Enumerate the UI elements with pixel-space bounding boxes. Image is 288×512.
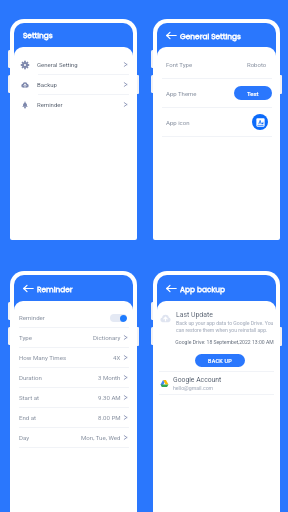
staticText: Test [247,90,259,97]
staticText: Google Account [173,376,222,384]
button[interactable]: Back [23,283,34,294]
staticText: hello@gmail.com [173,385,214,391]
staticText: Google Drive: 18 Septembet,2022 13:00 AM [173,339,276,345]
button[interactable]: Back [166,30,177,41]
button[interactable]: BACK UP [195,354,245,367]
button[interactable]: Reminder [14,95,133,114]
button[interactable]: Type [14,328,133,347]
staticText: Reminder [19,314,45,321]
button[interactable]: Backup [14,75,133,94]
button[interactable]: End at [14,408,133,427]
staticText: Mon, Tue, Wed [81,434,121,441]
button[interactable]: Font Type [157,50,276,78]
staticText: Roboto [247,61,267,68]
button[interactable]: General Setting [14,55,133,74]
button[interactable]: Duration [14,368,133,387]
staticText: Start at [19,394,39,401]
staticText: 9.30 AM [98,394,121,401]
staticText: Duration [19,374,42,381]
button[interactable]: Reminder toggle [110,314,127,322]
button[interactable]: Reminder [14,308,133,327]
staticText: App Theme [166,90,197,97]
staticText: General Setting [37,61,78,68]
staticText: 8.00 PM [98,414,121,421]
staticText: Font Type [166,61,193,68]
button[interactable]: App icon [157,108,276,136]
staticText: Type [19,334,32,341]
staticText: Dictionary [93,334,121,341]
button[interactable]: Test [234,86,272,100]
staticText: App icon [166,119,190,126]
staticText: Day [19,434,30,441]
button[interactable]: App icon [252,114,268,130]
staticText: Last Update [176,311,213,319]
staticText: How Many Times [19,354,67,361]
staticText: General Settings [180,31,241,41]
staticText: 4X [113,354,121,361]
staticText: Reminder [37,284,73,294]
staticText: Back up your app data to Google Drive. Y… [176,320,274,333]
staticText: Reminder [37,101,63,108]
staticText: BACK UP [208,358,233,364]
button[interactable]: Day [14,428,133,447]
button[interactable]: Back [166,283,177,294]
button[interactable]: Start at [14,388,133,407]
button[interactable]: App Theme [157,79,276,107]
staticText: 3 Month [98,374,121,381]
button[interactable]: How Many Times [14,348,133,367]
button[interactable]: Google Account [157,372,276,394]
staticText: Backup [37,81,57,88]
staticText: End at [19,414,37,421]
staticText: Settings [23,30,53,40]
staticText: App backup [180,284,225,294]
